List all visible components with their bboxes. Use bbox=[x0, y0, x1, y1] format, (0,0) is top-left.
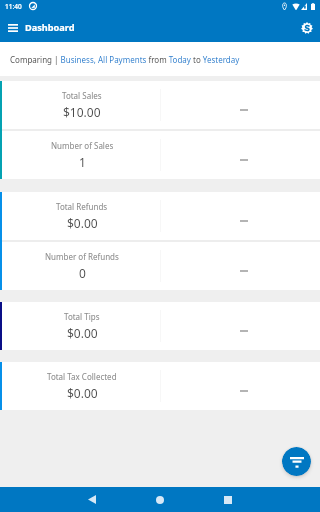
button[interactable]: Total Refunds bbox=[0, 192, 320, 240]
staticText: Total Tips bbox=[64, 311, 100, 322]
staticText: Number of Refunds bbox=[45, 251, 119, 262]
button[interactable]: Total Tax Collected bbox=[0, 362, 320, 410]
button[interactable]: Home bbox=[146, 487, 174, 512]
button[interactable]: Number of Sales bbox=[0, 131, 320, 179]
staticText: 11:40 bbox=[5, 2, 22, 11]
staticText: Total Tax Collected bbox=[47, 371, 117, 382]
staticText: Total Refunds bbox=[56, 201, 108, 212]
staticText: 1 bbox=[79, 154, 86, 170]
button[interactable]: Back bbox=[78, 487, 106, 512]
button[interactable]: Open navigation menu bbox=[2, 17, 24, 39]
staticText: Number of Sales bbox=[51, 140, 114, 151]
button[interactable]: Total Sales bbox=[0, 81, 320, 129]
staticText: Dashboard bbox=[25, 21, 75, 34]
staticText: $10.00 bbox=[63, 104, 101, 120]
button[interactable]: Recent apps bbox=[214, 487, 242, 512]
staticText: $0.00 bbox=[67, 325, 98, 341]
staticText: $0.00 bbox=[67, 385, 98, 401]
button[interactable]: Total Tips bbox=[0, 302, 320, 350]
staticText: 0 bbox=[79, 265, 86, 281]
staticText: $0.00 bbox=[67, 215, 98, 231]
button[interactable]: Settings bbox=[296, 17, 318, 39]
staticText: Total Sales bbox=[62, 90, 102, 101]
button[interactable]: Number of Refunds bbox=[0, 242, 320, 290]
staticText: Comparing | Business, All Payments from … bbox=[10, 54, 240, 65]
button[interactable]: Filter bbox=[282, 447, 311, 476]
